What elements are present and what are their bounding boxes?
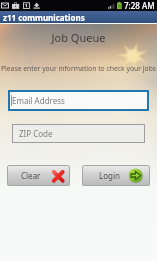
- staticText: 7:28 AM: [124, 0, 155, 11]
- staticText: Email Address: [12, 95, 65, 106]
- staticText: z11 communications: [3, 12, 85, 23]
- staticText: ZIP Code: [19, 128, 53, 139]
- button[interactable]: Login: [82, 165, 150, 186]
- staticText: Job Queue: [0, 30, 157, 45]
- button[interactable]: Clear: [7, 165, 70, 186]
- staticText: Please enter your information to check y…: [0, 64, 157, 73]
- button[interactable]: Email Address: [8, 90, 149, 111]
- staticText: Login: [99, 170, 120, 181]
- button[interactable]: ZIP Code: [12, 124, 145, 143]
- staticText: Clear: [21, 170, 41, 181]
